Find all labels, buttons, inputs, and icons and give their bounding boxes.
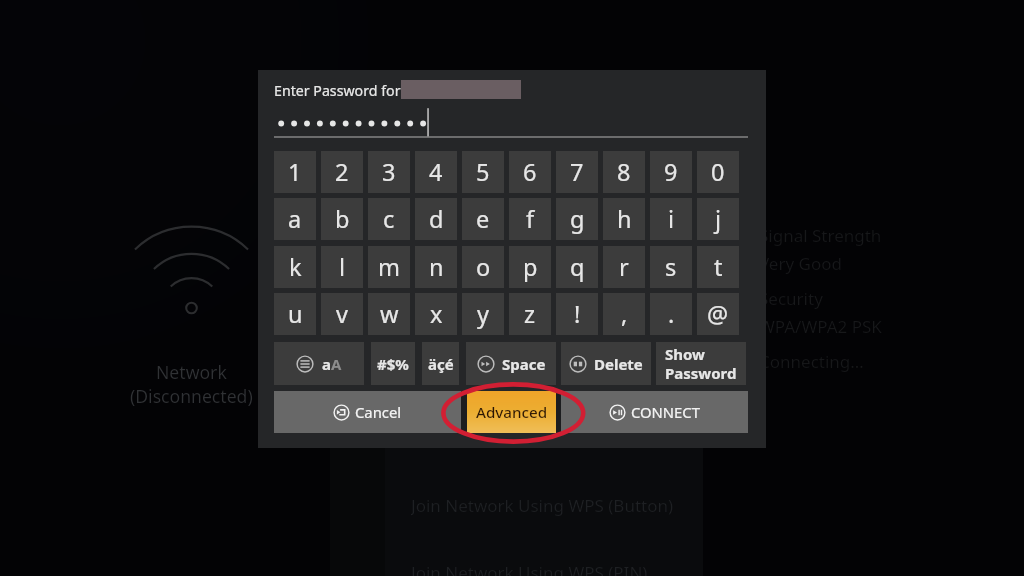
button[interactable]: l [321, 246, 363, 288]
staticText: , [621, 298, 628, 330]
button[interactable]: n [415, 246, 457, 288]
button[interactable]: h [603, 198, 645, 240]
button[interactable]: u [274, 293, 316, 335]
staticText: j [715, 203, 722, 235]
button[interactable]: ! [556, 293, 598, 335]
button[interactable]: o [462, 246, 504, 288]
button[interactable]: CONNECT [561, 391, 748, 433]
staticText: y [477, 298, 489, 330]
staticText: p [523, 251, 538, 283]
staticText: o [476, 251, 491, 283]
button[interactable]: 4 [415, 151, 457, 193]
staticText: w [380, 298, 399, 330]
button[interactable]: , [603, 293, 645, 335]
button[interactable]: 8 [603, 151, 645, 193]
button[interactable]: e [462, 198, 504, 240]
button[interactable]: r [603, 246, 645, 288]
staticText: r [619, 251, 629, 283]
button[interactable]: Cancel [274, 391, 461, 433]
staticText: g [570, 203, 585, 235]
staticText: x [430, 298, 443, 330]
staticText: 0 [711, 156, 725, 188]
staticText: v [336, 298, 348, 330]
button[interactable]: z [509, 293, 551, 335]
button[interactable]: c [368, 198, 410, 240]
staticText: (Disconnected) [130, 384, 253, 408]
button[interactable]: x [415, 293, 457, 335]
button[interactable]: äçé [422, 342, 459, 385]
button[interactable]: t [697, 246, 739, 288]
staticText: Security [759, 287, 823, 310]
button[interactable]: j [697, 198, 739, 240]
staticText: f [526, 203, 535, 235]
button[interactable]: 6 [509, 151, 551, 193]
staticText: Network [156, 360, 227, 384]
button[interactable]: 7 [556, 151, 598, 193]
staticText: d [429, 203, 444, 235]
button[interactable]: w [368, 293, 410, 335]
button[interactable]: Advanced [461, 391, 561, 433]
staticText: n [429, 251, 444, 283]
staticText: #$% [377, 354, 409, 374]
staticText: Cancel [355, 402, 402, 422]
button[interactable]: #$% [371, 342, 415, 385]
button[interactable]: . [650, 293, 692, 335]
staticText: z [524, 298, 536, 330]
staticText: q [570, 251, 585, 283]
button[interactable]: v [321, 293, 363, 335]
button[interactable]: f [509, 198, 551, 240]
staticText: a [322, 354, 331, 374]
staticText: 3 [382, 156, 396, 188]
button[interactable]: g [556, 198, 598, 240]
button[interactable]: 1 [274, 151, 316, 193]
staticText: 4 [429, 156, 443, 188]
staticText: a [288, 203, 302, 235]
button[interactable]: Delete [561, 342, 651, 385]
staticText: Join Network Using WPS (PIN) [411, 561, 648, 576]
button[interactable]: y [462, 293, 504, 335]
button[interactable]: q [556, 246, 598, 288]
staticText: e [476, 203, 490, 235]
staticText: WPA/WPA2 PSK [759, 315, 882, 338]
staticText: Advanced [476, 402, 548, 423]
button[interactable]: 9 [650, 151, 692, 193]
button[interactable]: s [650, 246, 692, 288]
staticText: Enter Password for [274, 81, 401, 100]
button[interactable]: 3 [368, 151, 410, 193]
staticText: h [617, 203, 632, 235]
button[interactable]: d [415, 198, 457, 240]
button[interactable]: p [509, 246, 551, 288]
staticText: Delete [594, 354, 643, 374]
button[interactable]: m [368, 246, 410, 288]
staticText: 1 [288, 156, 302, 188]
staticText: Join Network Using WPS (Button) [411, 494, 674, 517]
staticText: Very Good [759, 252, 842, 275]
staticText: i [668, 203, 675, 235]
staticText: 7 [570, 156, 584, 188]
staticText: u [288, 298, 303, 330]
button[interactable]: 0 [697, 151, 739, 193]
staticText: Connecting… [759, 350, 864, 373]
staticText: ! [574, 298, 581, 330]
button[interactable]: 5 [462, 151, 504, 193]
button[interactable]: Show Password [656, 342, 746, 385]
staticText: . [668, 298, 675, 330]
staticText: l [339, 251, 346, 283]
button[interactable]: 2 [321, 151, 363, 193]
button[interactable]: a [274, 198, 316, 240]
staticText: 9 [664, 156, 678, 188]
button[interactable]: b [321, 198, 363, 240]
staticText: 5 [476, 156, 490, 188]
button[interactable]: i [650, 198, 692, 240]
button[interactable]: Space [466, 342, 556, 385]
staticText: A [331, 354, 342, 374]
button[interactable]: @ [697, 293, 739, 335]
button[interactable]: Switch case [274, 342, 364, 385]
button[interactable]: k [274, 246, 316, 288]
staticText: k [289, 251, 302, 283]
staticText: c [383, 203, 395, 235]
staticText: 2 [335, 156, 349, 188]
staticText: Signal Strength [759, 224, 882, 247]
staticText: 6 [523, 156, 537, 188]
staticText: b [335, 203, 350, 235]
